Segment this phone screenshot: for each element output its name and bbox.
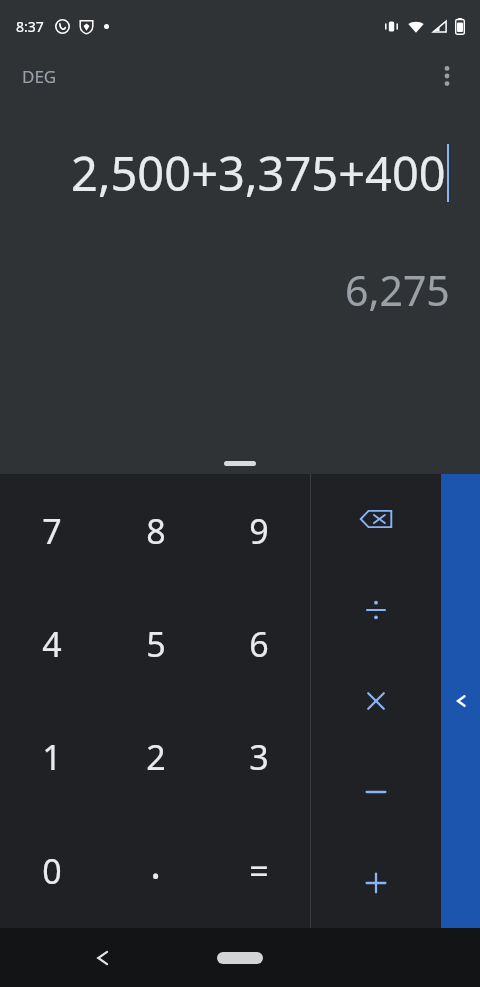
staticText: 8:37 <box>16 17 44 36</box>
button[interactable]: Divide <box>311 564 441 655</box>
button[interactable]: Subtract <box>311 746 441 837</box>
staticText: = <box>249 848 269 894</box>
button[interactable]: 1 <box>0 700 104 814</box>
button[interactable]: Add <box>311 837 441 928</box>
button[interactable]: Home <box>217 952 263 964</box>
staticText: 8 <box>146 508 166 554</box>
button[interactable]: 0 <box>0 814 104 928</box>
button[interactable]: 7 <box>0 474 104 587</box>
staticText: 2,500+3,375+400 <box>71 141 446 205</box>
staticText: 7 <box>42 508 62 554</box>
staticText: 4 <box>42 621 62 667</box>
button[interactable]: 3 <box>207 700 310 814</box>
button[interactable]: More options <box>425 54 469 98</box>
staticText: 0 <box>42 848 62 894</box>
button[interactable]: 2 <box>104 700 207 814</box>
button[interactable]: . <box>104 814 207 928</box>
staticText: DEG <box>22 65 57 88</box>
button[interactable]: Back <box>86 941 120 975</box>
staticText: 5 <box>146 621 166 667</box>
button[interactable]: 4 <box>0 587 104 700</box>
button[interactable]: Expand keypad <box>224 461 256 466</box>
staticText: 9 <box>249 508 269 554</box>
button[interactable]: 5 <box>104 587 207 700</box>
button[interactable]: 6 <box>207 587 310 700</box>
staticText: . <box>150 836 161 890</box>
button[interactable]: = <box>207 814 310 928</box>
button[interactable]: DEG <box>0 57 71 96</box>
staticText: 6,275 <box>345 262 450 318</box>
staticText: 1 <box>42 734 62 780</box>
staticText: 3 <box>249 734 269 780</box>
staticText: 6 <box>249 621 269 667</box>
button[interactable]: 9 <box>207 474 310 587</box>
button[interactable]: 8 <box>104 474 207 587</box>
button[interactable]: Multiply <box>311 655 441 746</box>
button[interactable]: Open advanced keypad <box>441 474 480 928</box>
staticText: 2 <box>146 734 166 780</box>
button[interactable]: Backspace <box>311 474 441 564</box>
